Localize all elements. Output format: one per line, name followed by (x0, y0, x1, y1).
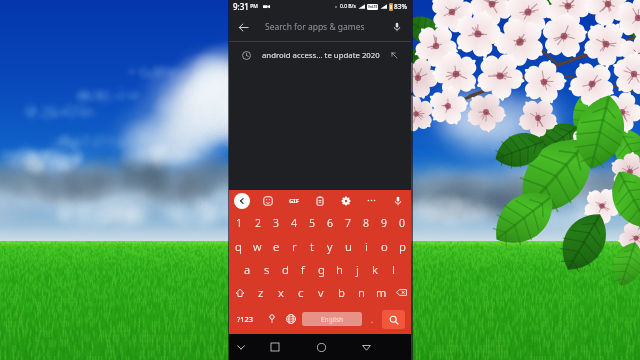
staticText: e (273, 239, 280, 255)
staticText: 2 (255, 216, 261, 230)
staticText: z (258, 285, 264, 301)
staticText: 83% (394, 2, 407, 11)
button[interactable]: n (351, 281, 371, 304)
button[interactable]: x (271, 281, 291, 304)
staticText: h (336, 262, 343, 278)
button[interactable]: settings (337, 192, 354, 209)
button[interactable]: c (291, 281, 311, 304)
staticText: l (392, 262, 395, 278)
staticText: GIF (289, 197, 299, 205)
staticText: o (381, 239, 388, 255)
button[interactable]: z (250, 281, 271, 304)
button[interactable]: q (229, 235, 248, 258)
button[interactable]: j (348, 258, 366, 281)
staticText: 4 (291, 216, 297, 230)
button[interactable]: clipboard (311, 192, 328, 209)
staticText: VoLTE (368, 5, 378, 9)
button[interactable]: Expand toolbar (234, 193, 250, 209)
button[interactable]: more (363, 192, 380, 209)
staticText: 6 (327, 216, 333, 230)
button[interactable]: r (285, 235, 303, 258)
button[interactable]: y (321, 235, 339, 258)
staticText: . (371, 314, 374, 325)
button[interactable]: 6 (321, 211, 339, 235)
button[interactable]: 3 (267, 211, 285, 235)
button[interactable]: d (276, 258, 294, 281)
button[interactable]: 7 (339, 211, 357, 235)
button[interactable]: e (267, 235, 285, 258)
button[interactable]: b (331, 281, 351, 304)
button[interactable]: v (311, 281, 331, 304)
staticText: 1 (236, 216, 242, 230)
button[interactable]: 2 (248, 211, 267, 235)
button[interactable]: t (303, 235, 321, 258)
staticText: y (327, 239, 333, 255)
button[interactable]: 8 (357, 211, 375, 235)
staticText: b (338, 285, 345, 301)
button[interactable]: Voice input (262, 304, 282, 334)
staticText: n (358, 285, 365, 301)
staticText: g (318, 262, 325, 278)
staticText: d (282, 262, 289, 278)
staticText: English (321, 315, 344, 324)
staticText: j (356, 262, 359, 278)
button[interactable]: Recents (252, 334, 298, 360)
staticText: v (318, 285, 324, 301)
staticText: 0 (399, 216, 405, 230)
button[interactable]: Hide keyboard (229, 334, 252, 360)
staticText: m (376, 285, 387, 301)
button[interactable]: p (393, 235, 411, 258)
button[interactable]: gif (285, 192, 302, 209)
button[interactable]: Search (382, 310, 405, 329)
button[interactable]: English (302, 312, 362, 326)
button[interactable]: o (375, 235, 393, 258)
button[interactable]: k (366, 258, 384, 281)
button[interactable]: android access... te update 2020 (229, 42, 411, 69)
staticText: p (399, 239, 406, 255)
button[interactable]: . (362, 304, 382, 334)
staticText: 9 (381, 216, 387, 230)
button[interactable]: 1 (229, 211, 248, 235)
staticText: s (264, 262, 270, 278)
button[interactable]: h (330, 258, 348, 281)
staticText: a (244, 262, 251, 278)
staticText: 9:31 (233, 1, 249, 12)
button[interactable]: Language (282, 304, 300, 334)
button[interactable]: i (357, 235, 375, 258)
button[interactable]: 9 (375, 211, 393, 235)
button[interactable]: m (371, 281, 391, 304)
button[interactable]: Voice search (383, 13, 411, 41)
button[interactable]: ?123 (229, 304, 262, 334)
button[interactable]: w (248, 235, 267, 258)
staticText: 7 (345, 216, 351, 230)
button[interactable]: 0 (393, 211, 411, 235)
staticText: f (301, 262, 305, 278)
staticText: w (253, 239, 262, 255)
button[interactable]: Home (298, 334, 344, 360)
button[interactable]: sticker (259, 192, 276, 209)
button[interactable]: f (294, 258, 312, 281)
button[interactable]: 5 (303, 211, 321, 235)
button[interactable]: Back (229, 13, 257, 41)
button[interactable]: Back (344, 334, 388, 360)
staticText: PM (249, 3, 258, 10)
button[interactable]: u (339, 235, 357, 258)
button[interactable]: g (312, 258, 330, 281)
staticText: c (298, 285, 304, 301)
button[interactable]: a (238, 258, 257, 281)
staticText: x (278, 285, 284, 301)
staticText: r (292, 239, 297, 255)
staticText: ?123 (237, 314, 254, 324)
staticText: q (235, 239, 242, 255)
button[interactable]: Shift (229, 281, 250, 304)
staticText: i (365, 239, 368, 255)
button[interactable]: 4 (285, 211, 303, 235)
button[interactable]: Backspace (391, 281, 411, 304)
staticText: t (310, 239, 314, 255)
button[interactable]: l (384, 258, 402, 281)
staticText: u (345, 239, 352, 255)
button[interactable]: mic (389, 192, 406, 209)
button[interactable]: s (257, 258, 276, 281)
staticText: k (372, 262, 378, 278)
staticText: 5 (309, 216, 315, 230)
